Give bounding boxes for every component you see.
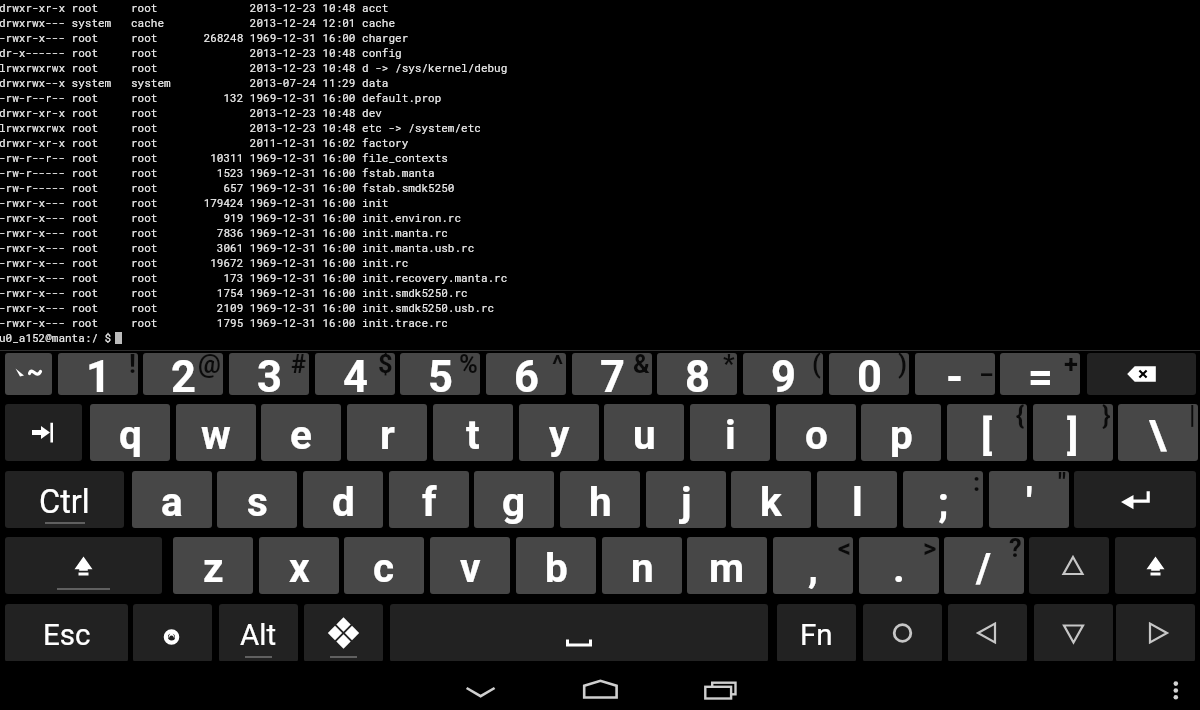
button[interactable]: v [430,537,510,594]
button[interactable]: Home [560,661,640,710]
button[interactable]: = [1000,353,1080,395]
staticText: a [161,478,183,525]
button[interactable]: 3 [229,353,309,395]
button[interactable]: s [217,471,297,528]
staticText: 4 [343,353,368,395]
button[interactable]: gear [133,604,212,662]
staticText: z [203,544,224,591]
staticText: _ [981,353,993,379]
button[interactable]: , [773,537,853,594]
button[interactable]: g [474,471,554,528]
button[interactable]: circle [863,604,942,662]
button[interactable]: 9 [743,353,823,395]
button[interactable]: e [261,404,341,461]
button[interactable]: diamond [304,604,383,662]
button[interactable]: 5 [400,353,480,395]
staticText: @ [198,353,221,379]
button[interactable]: q [90,404,170,461]
button[interactable]: tilde [5,353,52,395]
button[interactable]: . [859,537,939,594]
staticText: -rwxr-x--- root root 1754 1969-12-31 16:… [0,285,468,300]
button[interactable]: x [259,537,339,594]
button[interactable]: Recent apps [680,661,760,710]
button[interactable]: m [687,537,767,594]
button[interactable]: shift [5,537,162,594]
button[interactable]: h [560,471,640,528]
staticText: ( [812,353,821,379]
button[interactable]: ' [989,471,1069,528]
button[interactable]: d [303,471,383,528]
staticText: h [589,478,612,525]
staticText: -rw-r--r-- root root 132 1969-12-31 16:0… [0,90,442,105]
button[interactable]: triUp [1029,537,1109,594]
button[interactable]: o [776,404,856,461]
button[interactable]: ; [903,471,983,528]
button[interactable]: 1 [58,353,138,395]
button[interactable]: r [347,404,427,461]
button[interactable]: tab [5,404,82,461]
staticText: -rwxr-x--- root root 2109 1969-12-31 16:… [0,300,495,315]
button[interactable]: p [861,404,941,461]
staticText: = [1028,353,1053,395]
button[interactable]: u [604,404,684,461]
staticText: u [633,411,656,458]
button[interactable]: 6 [486,353,566,395]
staticText: : [973,471,981,497]
button[interactable]: 7 [572,353,652,395]
staticText: -rwxr-x--- root root 173 1969-12-31 16:0… [0,270,508,285]
button[interactable]: ] [1033,404,1113,461]
button[interactable]: y [519,404,599,461]
button[interactable]: z [173,537,253,594]
button[interactable]: n [602,537,682,594]
button[interactable]: shift [1115,537,1196,594]
staticText: e [290,411,312,458]
button[interactable]: k [731,471,811,528]
button[interactable]: Alt [219,604,298,662]
button[interactable]: w [176,404,256,461]
button[interactable]: b [516,537,596,594]
button[interactable]: Esc [5,604,128,662]
button[interactable]: - [915,353,995,395]
button[interactable]: Hide keyboard [440,661,520,710]
staticText: 1 [86,353,111,395]
staticText: # [291,353,307,379]
staticText: drwxrwx--x system system 2013-07-24 11:2… [0,75,389,90]
staticText: d [332,478,355,525]
button[interactable]: f [389,471,469,528]
staticText: - [946,353,964,395]
staticText: \ [1149,411,1167,458]
button[interactable]: 8 [657,353,737,395]
button[interactable]: space [390,604,768,662]
button[interactable]: / [944,537,1024,594]
button[interactable]: More options [1152,661,1200,710]
button[interactable]: l [817,471,897,528]
button[interactable]: triLeft [948,604,1027,662]
button[interactable]: backspace [1087,353,1196,395]
staticText: -rwxr-x--- root root 919 1969-12-31 16:0… [0,210,462,225]
button[interactable]: [ [947,404,1027,461]
button[interactable]: c [344,537,424,594]
staticText: | [1189,404,1196,430]
staticText: 5 [428,353,453,395]
staticText: [ [981,411,993,458]
button[interactable]: triRight [1116,604,1195,662]
button[interactable]: triDown [1034,604,1113,662]
button[interactable]: 4 [315,353,395,395]
staticText: y [549,411,570,458]
button[interactable]: Ctrl [5,471,124,528]
button[interactable]: i [690,404,770,461]
staticText: n [631,544,654,591]
button[interactable]: 2 [143,353,223,395]
button[interactable]: t [433,404,513,461]
button[interactable]: a [132,471,212,528]
button[interactable]: 0 [829,353,909,395]
button[interactable]: j [646,471,726,528]
button[interactable]: enter [1074,471,1196,528]
staticText: -rwxr-x--- root root 1795 1969-12-31 16:… [0,315,448,330]
staticText: 0 [857,353,882,395]
staticText: -rw-r--r-- root root 10311 1969-12-31 16… [0,150,448,165]
button[interactable]: Fn [777,604,856,662]
staticText: v [460,544,481,591]
button[interactable]: \ [1118,404,1198,461]
staticText: Esc [43,618,91,653]
